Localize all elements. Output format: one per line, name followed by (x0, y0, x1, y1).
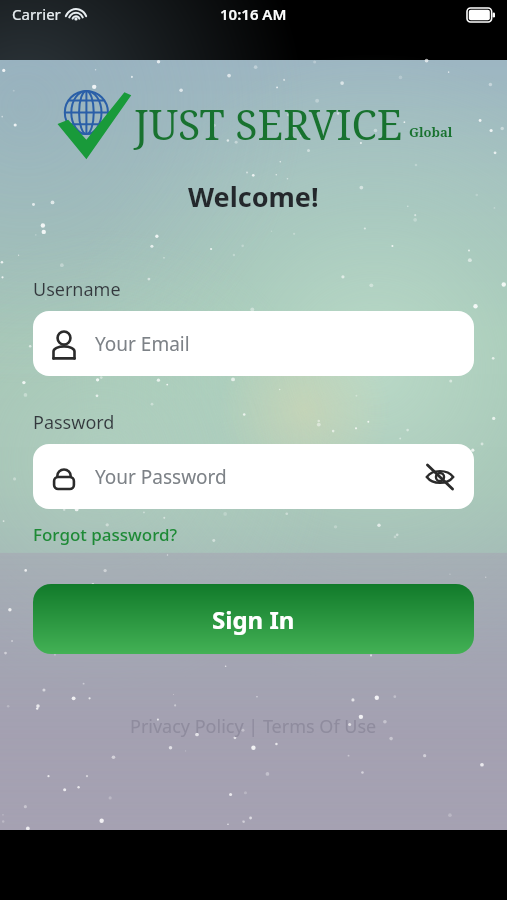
staticText: Username (33, 277, 121, 302)
staticText: Forgot password? (33, 523, 178, 546)
staticText: Carrier (12, 4, 61, 24)
staticText: JUST SERVICE (134, 96, 403, 152)
staticText: Your Password (95, 464, 227, 490)
staticText: Welcome! (188, 178, 319, 215)
button[interactable]: Show password (422, 459, 458, 495)
button[interactable]: Your Password (33, 444, 474, 509)
staticText: Sign In (212, 603, 295, 636)
button[interactable]: Forgot password? (33, 521, 178, 548)
staticText: Global (409, 123, 453, 141)
button[interactable]: Privacy Policy | Terms Of Use (0, 714, 507, 739)
staticText: Privacy Policy | Terms Of Use (130, 714, 377, 739)
staticText: 10:16 AM (220, 4, 287, 24)
staticText: Your Email (95, 331, 190, 357)
button[interactable]: Sign In (33, 584, 474, 654)
button[interactable]: Your Email (33, 311, 474, 376)
staticText: Password (33, 410, 115, 435)
